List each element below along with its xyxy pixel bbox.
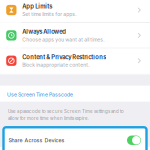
staticText: Choose apps you want at all times. <box>22 37 104 43</box>
button[interactable]: Always Allowed <box>0 23 150 48</box>
staticText: Content & Privacy Restrictions <box>22 53 106 61</box>
staticText: Share Across Devices <box>8 137 64 143</box>
staticText: Always Allowed <box>22 28 66 35</box>
staticText: Set time limits for apps. <box>22 11 76 17</box>
button[interactable]: Content & Privacy Restrictions <box>0 48 150 73</box>
staticText: App Limits <box>22 3 52 10</box>
button[interactable]: Share Across Devices <box>3 127 146 150</box>
staticText: Use a passcode to secure Screen Time set… <box>8 109 124 114</box>
button[interactable]: App Limits <box>0 0 150 22</box>
staticText: Use Screen Time Passcode <box>7 91 73 98</box>
staticText: allow for more time when limits expire. <box>8 116 89 121</box>
staticText: Block inappropriate content. <box>22 62 89 68</box>
button[interactable]: Use Screen Time Passcode <box>0 86 150 102</box>
